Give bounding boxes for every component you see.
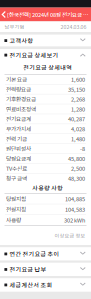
staticText: 48,300 xyxy=(68,174,85,182)
staticText: -8 xyxy=(80,144,85,153)
staticText: 사용량 xyxy=(6,216,21,224)
button[interactable]: 세금계산서 조회 xyxy=(0,278,91,292)
staticText: 104,583 xyxy=(65,205,85,213)
staticText: 사용량 사항 xyxy=(32,184,63,192)
staticText: 104,885 xyxy=(65,195,85,203)
button[interactable]: 전기요금 납부 xyxy=(0,263,91,276)
staticText: [한국전력] 2024년 08월 전기요금 안내 xyxy=(7,10,91,18)
staticText: 1,480 xyxy=(71,135,85,143)
button[interactable]: 연간 전기요금 추이 xyxy=(0,247,91,261)
staticText: 연료비조정액 xyxy=(6,105,36,113)
staticText: 35,150 xyxy=(68,85,85,93)
staticText: 고객사항 xyxy=(9,36,33,45)
staticText: 전기요금 납부 xyxy=(9,265,46,274)
staticText: 부가가치세 xyxy=(6,125,31,133)
button[interactable]: Back xyxy=(0,8,7,21)
staticText: 2,268 xyxy=(71,95,85,103)
staticText: 전월지침 xyxy=(6,205,26,213)
staticText: 2,500 xyxy=(71,164,85,172)
staticText: 전기요금 상세내역 xyxy=(23,63,72,72)
staticText: 기본 요금 xyxy=(6,75,27,83)
staticText: 남부기범 xyxy=(4,23,24,30)
staticText: 연간 전기요금 추이 xyxy=(9,250,59,258)
staticText: 당월지침 xyxy=(6,195,26,203)
staticText: 전기요금 상세보기 xyxy=(9,51,58,59)
staticText: 1,280 xyxy=(71,105,85,113)
staticText: 전력량요금 xyxy=(6,85,31,93)
staticText: 전기요금계 xyxy=(6,115,31,123)
staticText: 4,028 xyxy=(71,125,85,133)
staticText: 1,600 xyxy=(71,75,85,83)
staticText: 40,287 xyxy=(68,115,85,123)
staticText: 원단위절사 xyxy=(6,144,31,153)
staticText: 이상요금 정보 xyxy=(54,232,85,239)
button[interactable]: 전기요금 상세보기 xyxy=(0,49,91,61)
button[interactable]: 고객사항 xyxy=(0,35,91,47)
staticText: 302 kWh xyxy=(64,216,85,224)
staticText: 세금계산서 조회 xyxy=(9,281,52,289)
staticText: 전력 기금 xyxy=(6,135,27,143)
staticText: 2024.03.06 xyxy=(60,23,86,30)
staticText: 청구 금액 xyxy=(6,174,27,182)
staticText: 기후환경요금 xyxy=(6,95,36,103)
staticText: TV수신료 xyxy=(6,164,27,172)
staticText: 45,800 xyxy=(68,154,85,162)
staticText: 당월요금계 xyxy=(6,154,31,162)
